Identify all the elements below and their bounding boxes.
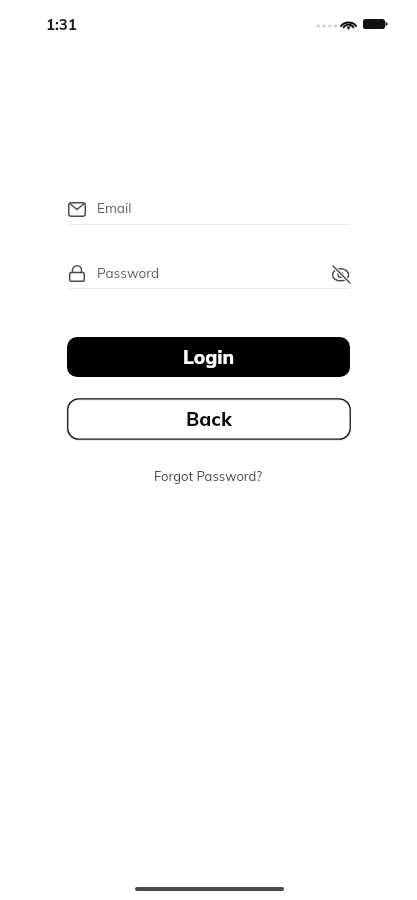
button[interactable]: Password	[67, 263, 350, 289]
button[interactable]: Login	[67, 337, 350, 377]
staticText: Login	[183, 345, 235, 369]
staticText: Password	[97, 264, 160, 281]
staticText: 1:31	[46, 15, 77, 34]
button[interactable]: Back	[67, 398, 351, 440]
button[interactable]: Show password	[330, 263, 352, 285]
button[interactable]: Email	[67, 200, 350, 225]
staticText: Back	[186, 407, 232, 431]
staticText: Email	[97, 199, 132, 216]
button[interactable]: Forgot Password?	[148, 465, 269, 487]
